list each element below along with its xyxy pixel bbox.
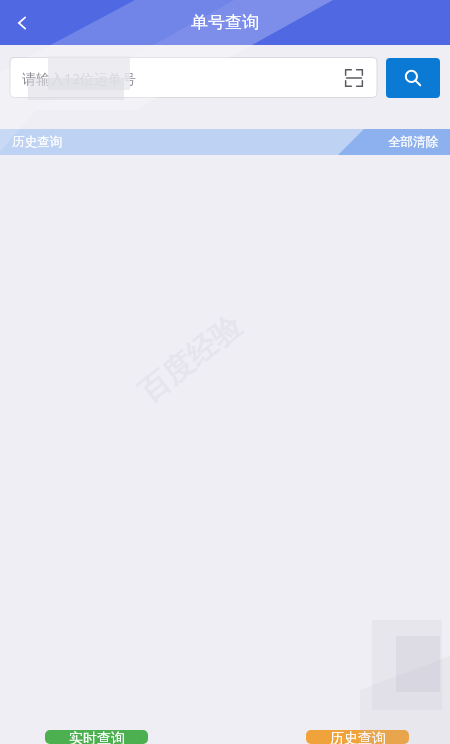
staticText: 历史查询	[12, 134, 62, 150]
button[interactable]: 历史查询	[306, 730, 409, 744]
staticText: 实时查询	[69, 730, 125, 744]
button[interactable]: 全部清除	[372, 129, 450, 155]
button[interactable]: Search	[386, 58, 440, 98]
staticText: 单号查询	[191, 12, 259, 33]
button[interactable]: 请输入12位运单号	[10, 58, 377, 98]
button[interactable]: Back	[0, 1, 44, 45]
staticText: 请输入12位运单号	[22, 69, 341, 88]
button[interactable]: 实时查询	[45, 730, 148, 744]
staticText: 历史查询	[330, 730, 386, 744]
staticText: 全部清除	[388, 134, 438, 150]
button[interactable]: Scan barcode	[341, 65, 367, 91]
